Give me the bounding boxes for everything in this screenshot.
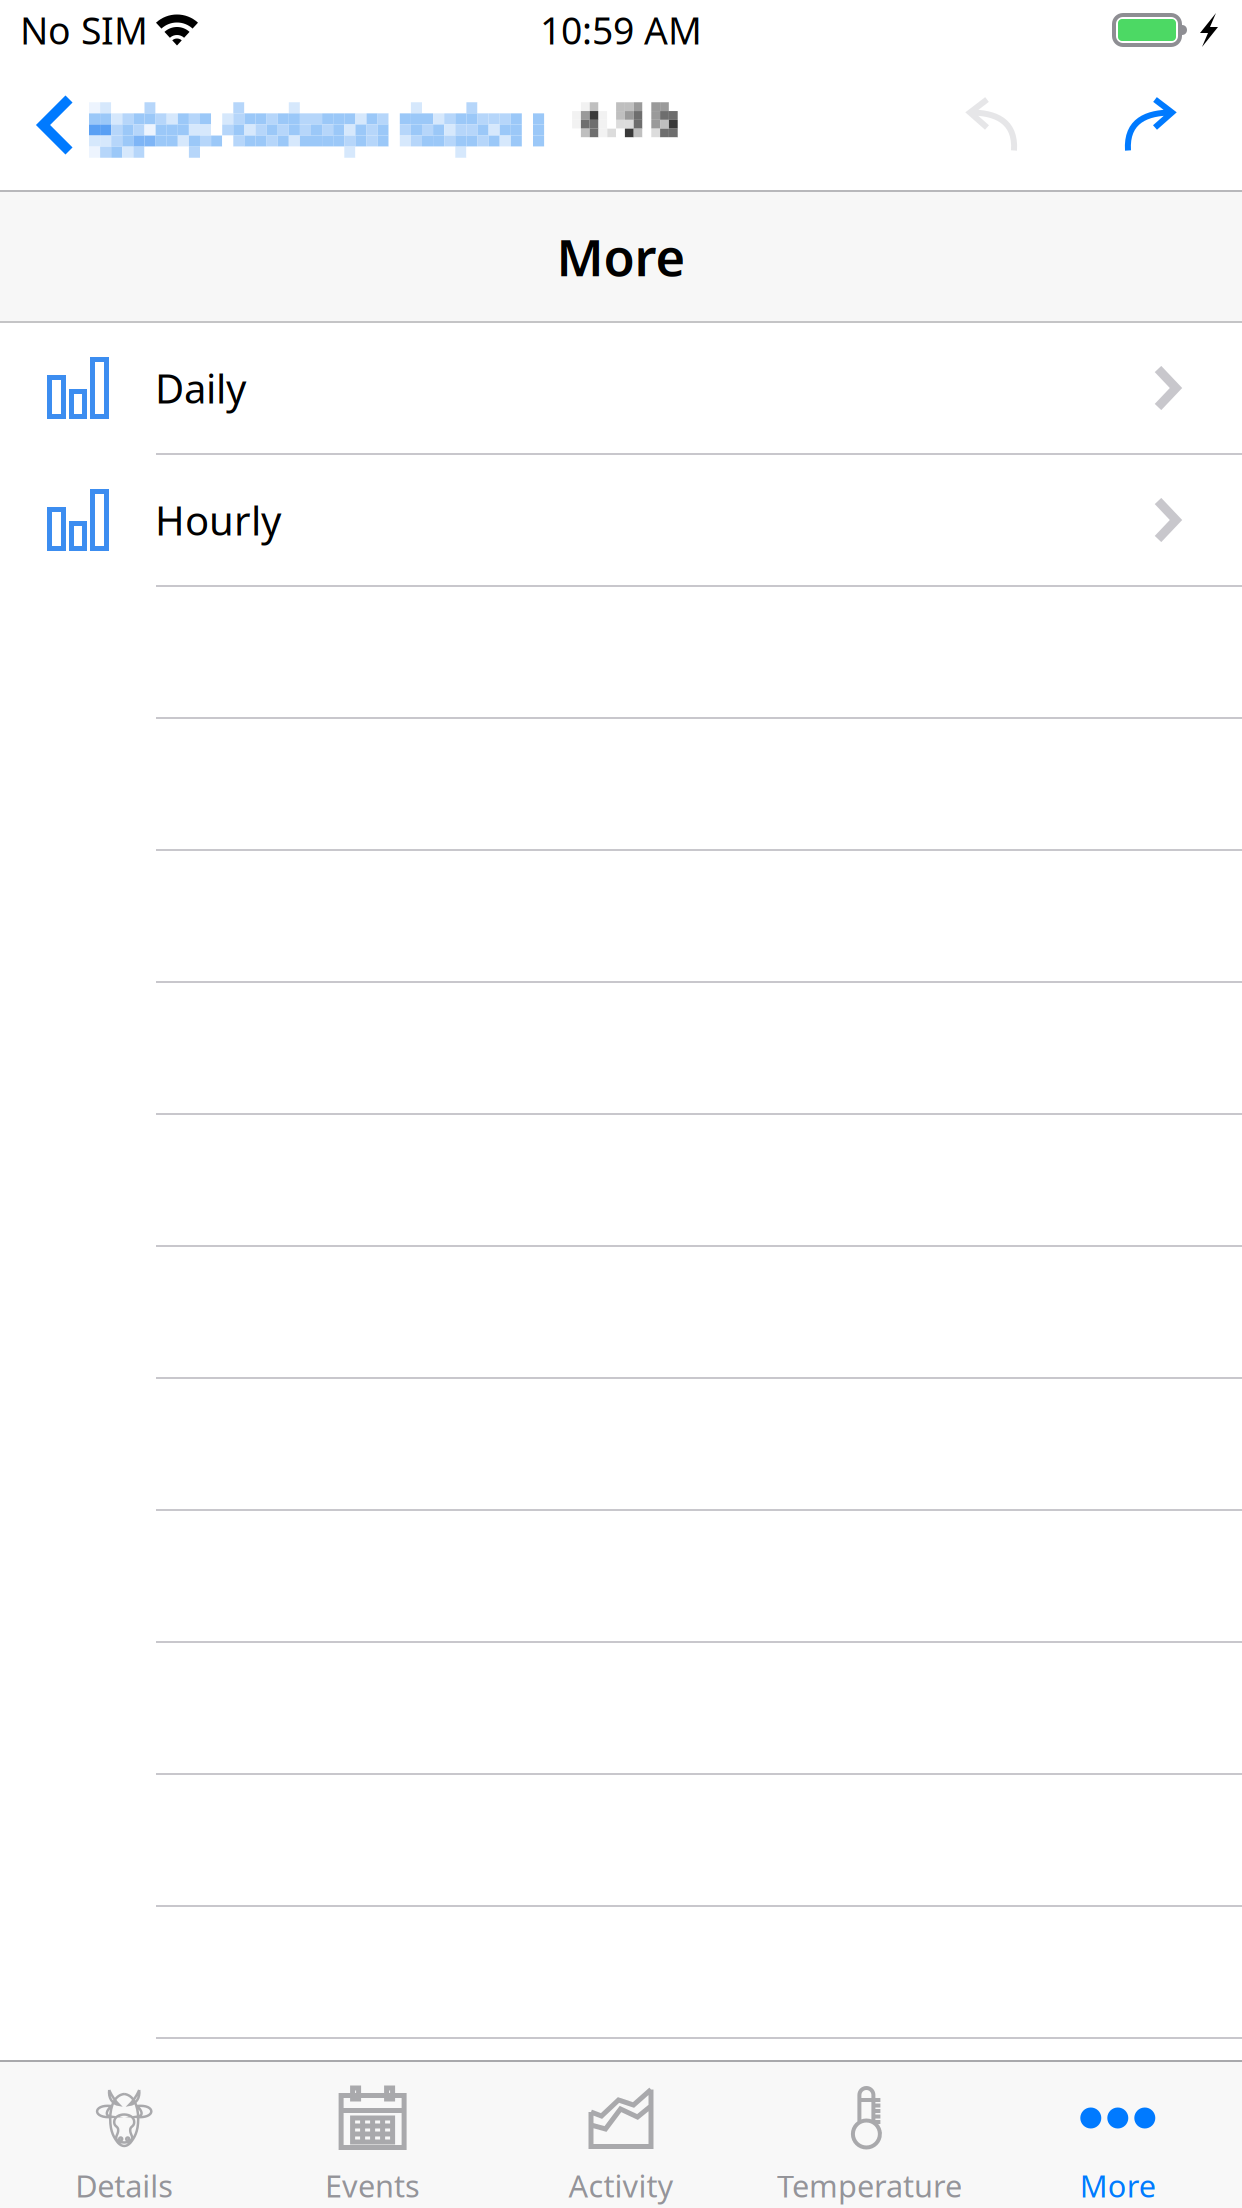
button[interactable]: Undo <box>931 60 1053 190</box>
staticText: Details <box>75 2165 173 2206</box>
staticText: Activity <box>568 2165 673 2206</box>
button[interactable]: Activity <box>497 2062 745 2208</box>
button[interactable]: More <box>994 2062 1242 2208</box>
button[interactable]: Temperature <box>745 2062 994 2208</box>
staticText: Daily <box>155 361 246 414</box>
staticText: More <box>1080 2165 1156 2206</box>
staticText: Temperature <box>777 2165 962 2206</box>
button[interactable]: Details <box>0 2062 248 2208</box>
staticText: More <box>556 223 685 290</box>
button[interactable]: Redo <box>1089 60 1211 190</box>
button[interactable]: Events <box>248 2062 497 2208</box>
button[interactable]: Hourly <box>0 455 1242 587</box>
staticText: 10:59 AM <box>540 5 702 55</box>
staticText: Hourly <box>155 493 281 546</box>
button[interactable]: Back <box>0 60 678 190</box>
button[interactable]: Daily <box>0 323 1242 455</box>
staticText: Events <box>325 2165 420 2206</box>
staticText: No SIM <box>20 5 148 55</box>
